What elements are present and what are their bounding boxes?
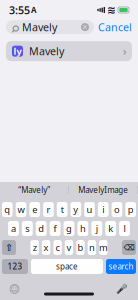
button[interactable]: r (43, 202, 54, 217)
staticText: y (73, 203, 78, 216)
staticText: k (108, 222, 113, 235)
button[interactable]: b (76, 240, 85, 255)
staticText: u (86, 203, 92, 216)
button[interactable]: o (112, 202, 122, 217)
staticText: ⌕ (11, 14, 19, 40)
staticText: 123 (7, 261, 22, 272)
staticText: Mavely (22, 20, 57, 34)
button[interactable]: MavelyImage (69, 185, 137, 195)
button[interactable]: c (53, 240, 62, 255)
staticText: search (108, 261, 133, 272)
button[interactable]: h (77, 221, 88, 236)
staticText: g (66, 222, 72, 235)
button[interactable]: i (98, 202, 109, 217)
staticText: A (31, 5, 37, 15)
staticText: w (17, 203, 24, 216)
button[interactable]: l (119, 221, 130, 236)
button[interactable]: u (84, 202, 95, 217)
button[interactable]: m (99, 240, 107, 255)
staticText: e (32, 203, 37, 216)
button[interactable]: w (16, 202, 26, 217)
button[interactable]: “Mavely” (0, 185, 68, 195)
staticText: n (89, 241, 95, 254)
button[interactable]: Cancel (98, 20, 132, 34)
button[interactable]: 123 (2, 259, 28, 274)
button[interactable]: Clear text (81, 23, 89, 31)
button[interactable]: n (88, 240, 96, 255)
staticText: Mavely (29, 44, 64, 58)
button[interactable]: j (91, 221, 102, 236)
staticText: i (102, 203, 104, 216)
staticText: d (38, 222, 44, 235)
staticText: Cancel (98, 20, 132, 34)
staticText: 3:55 (9, 3, 30, 17)
staticText: space (56, 261, 78, 272)
staticText: ☺ (10, 284, 18, 294)
button[interactable]: x (42, 240, 50, 255)
staticText: f (54, 222, 57, 235)
staticText: c (56, 241, 60, 254)
staticText: › (123, 44, 126, 58)
button[interactable]: g (64, 221, 74, 236)
button[interactable]: k (105, 221, 116, 236)
staticText: a (11, 222, 16, 235)
button[interactable]: ly (0, 41, 138, 61)
button[interactable]: Emoji keyboard (10, 284, 19, 294)
button[interactable]: p (125, 202, 136, 217)
button[interactable]: space (31, 259, 103, 274)
staticText: 🎤 (116, 284, 128, 294)
button[interactable]: Delete (122, 240, 136, 255)
button[interactable]: q (2, 202, 13, 217)
staticText: z (33, 241, 37, 254)
staticText: q (4, 203, 10, 216)
staticText: x (44, 241, 49, 254)
staticText: o (114, 203, 120, 216)
staticText: “Mavely” (18, 185, 50, 195)
button[interactable]: f (50, 221, 61, 236)
button[interactable]: e (29, 202, 40, 217)
button[interactable]: v (65, 240, 73, 255)
button[interactable]: z (30, 240, 39, 255)
staticText: v (66, 241, 71, 254)
staticText: s (25, 222, 29, 235)
button[interactable]: a (8, 221, 19, 236)
button[interactable]: search (106, 259, 136, 274)
button[interactable]: Shift (2, 240, 16, 255)
staticText: j (96, 222, 98, 235)
staticText: ⇧ (5, 242, 13, 253)
staticText: p (128, 203, 134, 216)
button[interactable]: t (57, 202, 67, 217)
button[interactable]: s (22, 221, 33, 236)
staticText: ✕ (82, 23, 88, 31)
staticText: h (80, 222, 86, 235)
staticText: l (124, 222, 126, 235)
staticText: ly (13, 45, 21, 57)
staticText: m (99, 241, 107, 254)
staticText: t (61, 203, 64, 216)
staticText: ⌫ (123, 243, 134, 252)
staticText: ≋ (107, 4, 116, 16)
staticText: b (77, 241, 83, 254)
staticText: MavelyImage (78, 185, 128, 195)
button[interactable]: Dictation (116, 284, 128, 294)
button[interactable]: d (36, 221, 47, 236)
staticText: r (46, 203, 50, 216)
button[interactable]: y (70, 202, 81, 217)
